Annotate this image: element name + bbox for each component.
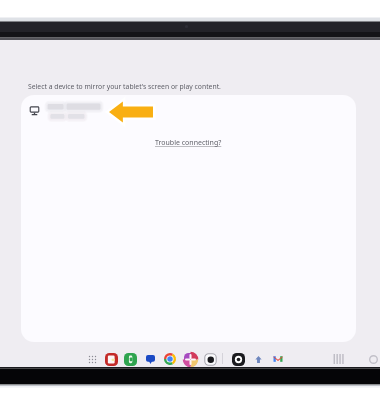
button[interactable]: Files xyxy=(104,352,118,366)
staticText: Trouble connecting? xyxy=(155,138,222,148)
button[interactable] xyxy=(21,101,356,135)
staticText: Select a device to mirror your tablet's … xyxy=(28,82,221,91)
button[interactable]: Camera xyxy=(203,352,217,366)
button[interactable]: Apps xyxy=(85,352,99,366)
button[interactable]: Gmail xyxy=(271,352,285,366)
button[interactable]: Home xyxy=(366,352,380,366)
button[interactable]: Messages xyxy=(143,352,157,366)
button[interactable]: Trouble connecting? xyxy=(147,135,230,151)
button[interactable]: Photos xyxy=(183,352,197,366)
button[interactable]: Settings xyxy=(231,352,245,366)
button[interactable]: Recents xyxy=(331,352,345,366)
button[interactable]: Chrome xyxy=(163,352,177,366)
button[interactable]: Phone xyxy=(123,352,137,366)
button[interactable]: Drive xyxy=(251,352,265,366)
